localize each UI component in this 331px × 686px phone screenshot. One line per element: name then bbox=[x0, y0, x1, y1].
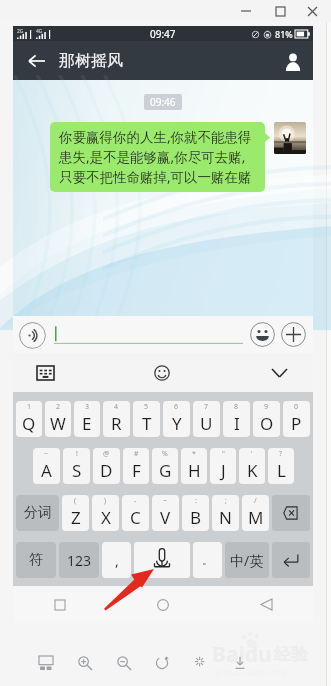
button[interactable]: 123 bbox=[59, 542, 99, 578]
staticText: 。 bbox=[202, 553, 213, 567]
button[interactable]: Download bbox=[227, 650, 253, 676]
button[interactable]: Microphone bbox=[134, 542, 190, 578]
button[interactable]: Emoji panel bbox=[148, 359, 176, 387]
staticText: R bbox=[111, 412, 122, 435]
staticText: H bbox=[188, 459, 201, 482]
staticText: Q bbox=[22, 412, 36, 435]
staticText: V bbox=[160, 506, 171, 529]
button[interactable]: 7 bbox=[193, 401, 220, 437]
button[interactable]: 9 bbox=[253, 401, 280, 437]
staticText: T bbox=[142, 412, 152, 435]
button[interactable]: Minimize bbox=[229, 0, 263, 22]
staticText: 2 bbox=[56, 402, 61, 412]
staticText: 4 bbox=[114, 402, 119, 412]
button[interactable]: Fit to screen bbox=[33, 650, 59, 676]
staticText: E bbox=[82, 412, 92, 435]
button[interactable]: Recents bbox=[43, 586, 77, 623]
button[interactable]: 2 bbox=[45, 401, 71, 437]
button[interactable]: Maximize bbox=[263, 0, 297, 22]
button[interactable]: : bbox=[182, 495, 209, 531]
button[interactable]: * bbox=[181, 448, 207, 484]
staticText: B bbox=[190, 506, 202, 529]
staticText: % bbox=[162, 449, 168, 459]
button[interactable]: " bbox=[210, 448, 236, 484]
button[interactable]: More bbox=[280, 321, 307, 348]
staticText: G bbox=[159, 459, 172, 482]
staticText: 1 bbox=[27, 402, 32, 412]
staticText: M bbox=[248, 506, 264, 529]
staticText: 那树摇风 bbox=[59, 51, 123, 71]
staticText: W bbox=[50, 412, 66, 435]
staticText: J bbox=[221, 459, 226, 482]
staticText: 123 bbox=[67, 551, 92, 570]
button[interactable]: 你要赢得你的人生,你就不能患得患失,是不是能够赢,你尽可去赌,只要不把性命赌掉,… bbox=[50, 122, 265, 192]
staticText: 7 bbox=[204, 402, 209, 412]
staticText: 81% bbox=[275, 28, 293, 40]
staticText: C bbox=[130, 506, 141, 529]
button[interactable]: ~ bbox=[152, 495, 179, 531]
staticText: 符 bbox=[29, 551, 43, 569]
staticText: 6 bbox=[174, 402, 179, 412]
staticText: F bbox=[132, 459, 141, 482]
button[interactable]: 中/英 bbox=[225, 542, 269, 578]
staticText: O bbox=[260, 412, 274, 435]
button[interactable]: ' bbox=[239, 448, 265, 484]
button[interactable]: @ bbox=[93, 448, 120, 484]
button[interactable]: Zoom out bbox=[111, 650, 137, 676]
staticText: X bbox=[101, 506, 111, 529]
button[interactable]: , bbox=[102, 542, 131, 578]
staticText: 8 bbox=[234, 402, 239, 412]
staticText: Baidu bbox=[212, 640, 272, 669]
button[interactable]: Back bbox=[249, 586, 283, 623]
staticText: # bbox=[134, 449, 139, 459]
button[interactable]: Backspace bbox=[272, 495, 310, 531]
staticText: ! bbox=[76, 449, 78, 459]
button[interactable]: Rotate bbox=[149, 650, 175, 676]
staticText: - bbox=[134, 496, 137, 506]
button[interactable]: # bbox=[123, 448, 149, 484]
staticText: 你要赢得你的人生,你就不能患得患失,是不是能够赢,你尽可去赌,只要不把性命赌掉,… bbox=[59, 128, 258, 186]
button[interactable]: 8 bbox=[223, 401, 250, 437]
staticText: A bbox=[41, 459, 52, 482]
button[interactable] bbox=[54, 316, 243, 353]
button[interactable]: 分词 bbox=[16, 495, 59, 531]
staticText: ~ bbox=[44, 449, 49, 459]
button[interactable]: 0 bbox=[283, 401, 310, 437]
staticText: 中/英 bbox=[230, 551, 264, 570]
button[interactable]: 5 bbox=[133, 401, 160, 437]
button[interactable]: Close bbox=[297, 0, 327, 22]
staticText: Z bbox=[71, 506, 81, 529]
button[interactable]: Home bbox=[146, 586, 180, 623]
button[interactable]: 1 bbox=[16, 401, 42, 437]
button[interactable]: ( bbox=[62, 495, 89, 531]
button[interactable]: Enhance bbox=[188, 650, 214, 676]
button[interactable]: 。 bbox=[193, 542, 222, 578]
button[interactable]: % bbox=[152, 448, 178, 484]
button[interactable]: Enter bbox=[272, 542, 310, 578]
staticText: L bbox=[277, 459, 286, 482]
button[interactable]: Hide keyboard bbox=[265, 359, 293, 387]
button[interactable]: 3 bbox=[74, 401, 100, 437]
staticText: 分词 bbox=[24, 504, 52, 522]
button[interactable]: Keyboard bbox=[31, 359, 59, 387]
button[interactable]: 符 bbox=[16, 542, 56, 578]
button[interactable]: ; bbox=[212, 495, 239, 531]
staticText: " bbox=[222, 449, 225, 459]
button[interactable]: 4 bbox=[103, 401, 130, 437]
button[interactable]: - bbox=[122, 495, 149, 531]
button[interactable]: Contact profile bbox=[273, 41, 313, 80]
button[interactable]: / bbox=[242, 495, 269, 531]
button[interactable]: Avatar bbox=[274, 122, 306, 154]
button[interactable]: ~ bbox=[33, 448, 60, 484]
button[interactable]: Voice input bbox=[18, 321, 46, 349]
staticText: 0 bbox=[294, 402, 299, 412]
button[interactable]: Zoom in bbox=[72, 650, 98, 676]
button[interactable]: ) bbox=[92, 495, 119, 531]
button[interactable]: 6 bbox=[163, 401, 190, 437]
staticText: ; bbox=[225, 496, 227, 506]
button[interactable]: Back bbox=[13, 41, 59, 80]
button[interactable]: ? bbox=[268, 448, 294, 484]
button[interactable]: ! bbox=[63, 448, 90, 484]
button[interactable]: Emoji bbox=[249, 321, 276, 348]
staticText: @ bbox=[103, 449, 110, 459]
